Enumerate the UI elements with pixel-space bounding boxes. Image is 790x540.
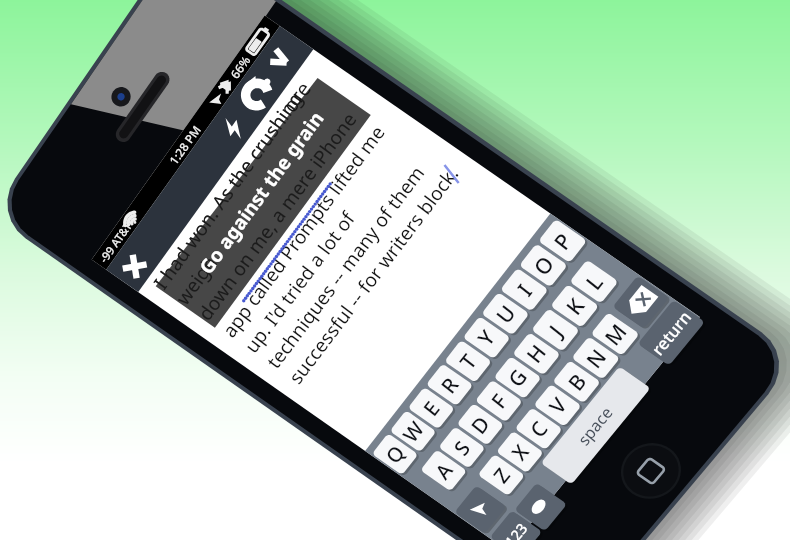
other: Prompts writing app shown on an iPhone — [0, 0, 790, 540]
